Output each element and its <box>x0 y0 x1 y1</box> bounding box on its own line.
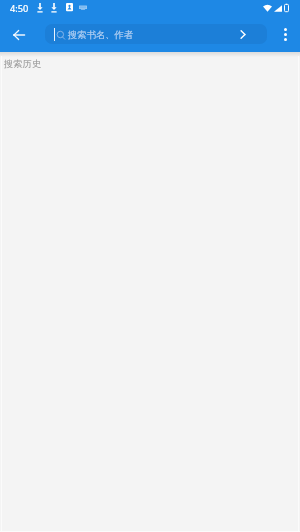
button[interactable]: 搜索书名、作者 <box>45 24 267 44</box>
button[interactable]: More options <box>270 18 300 51</box>
button[interactable]: Back <box>0 16 37 53</box>
staticText: 搜索书名、作者 <box>68 29 134 41</box>
staticText: 4:50 <box>10 2 29 15</box>
button[interactable]: Search <box>232 24 253 44</box>
staticText: 搜索历史 <box>4 58 42 70</box>
